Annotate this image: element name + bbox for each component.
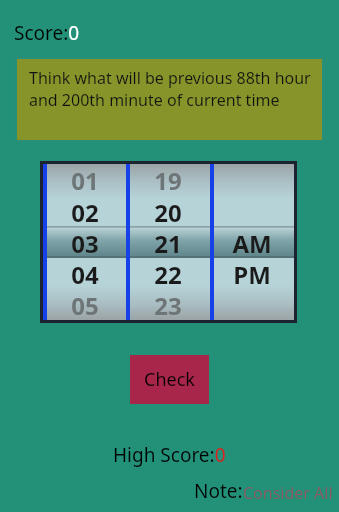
staticText: PM	[233, 258, 271, 289]
staticText: Note:	[194, 478, 243, 504]
staticText: AM	[232, 227, 272, 258]
staticText: 03	[71, 227, 99, 258]
staticText: Think what will be previous 88th hour an…	[29, 67, 314, 111]
button[interactable]: Check	[130, 355, 209, 404]
staticText: Check	[144, 367, 195, 392]
staticText: High Score:0	[113, 442, 226, 468]
staticText: 20	[154, 196, 182, 227]
staticText: 22	[154, 258, 182, 289]
staticText: 23	[154, 289, 182, 320]
button[interactable]: Minute picker	[126, 164, 210, 320]
staticText: Consider All	[243, 482, 333, 504]
button[interactable]: Hour picker	[43, 164, 126, 320]
staticText: 21	[154, 227, 182, 258]
staticText: 19	[154, 164, 182, 196]
staticText: 01	[71, 164, 99, 196]
staticText: 05	[71, 289, 99, 320]
staticText: 02	[71, 196, 99, 227]
staticText: Score:0	[14, 20, 80, 46]
staticText: 04	[71, 258, 99, 289]
button[interactable]: AM PM picker	[210, 164, 294, 320]
